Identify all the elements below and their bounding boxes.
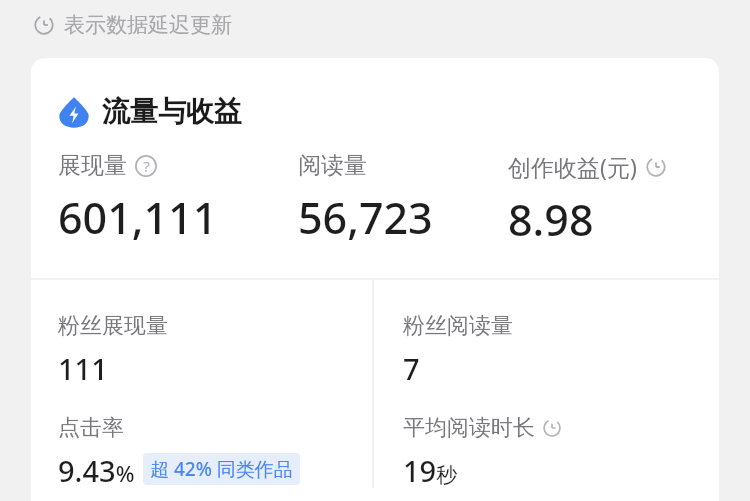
button[interactable]: 点击率: [31, 414, 372, 488]
staticText: 粉丝展现量: [58, 312, 168, 340]
staticText: 9.43%: [58, 451, 135, 488]
button[interactable]: 平均阅读时长: [372, 414, 712, 488]
staticText: 流量与收益: [102, 94, 242, 129]
staticText: 点击率: [58, 414, 124, 442]
staticText: 56,723: [298, 188, 433, 247]
staticText: 601,111: [58, 188, 218, 247]
button[interactable]: 展现量: [58, 151, 298, 247]
button[interactable]: 粉丝展现量: [31, 280, 372, 388]
staticText: 表示数据延迟更新: [64, 12, 232, 38]
staticText: 111: [58, 349, 108, 388]
staticText: 19秒: [403, 451, 458, 488]
button[interactable]: 流量与收益: [58, 94, 242, 129]
other: 展现量说明: [135, 155, 157, 177]
other: 数据延迟更新: [33, 14, 55, 36]
staticText: ?: [143, 156, 150, 176]
staticText: 7: [403, 349, 420, 388]
staticText: 超 42% 同类作品: [150, 456, 293, 482]
staticText: 阅读量: [298, 151, 367, 180]
button[interactable]: 创作收益(元): [508, 151, 708, 249]
staticText: 创作收益(元): [508, 151, 637, 182]
staticText: 展现量: [58, 151, 127, 180]
staticText: 8.98: [508, 190, 594, 249]
button[interactable]: 数据延迟更新: [33, 10, 232, 40]
staticText: 粉丝阅读量: [403, 312, 513, 340]
other: 数据延迟更新: [542, 418, 562, 438]
button[interactable]: 粉丝阅读量: [372, 280, 712, 388]
other: 数据延迟更新: [645, 156, 667, 178]
staticText: 平均阅读时长: [403, 414, 535, 442]
button[interactable]: 阅读量: [298, 151, 508, 247]
other: 流量与收益: [58, 96, 90, 128]
